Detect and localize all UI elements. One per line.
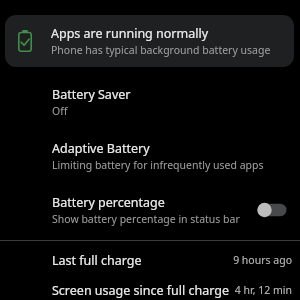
staticText: Apps are running normally [51,25,209,42]
button[interactable]: Battery percentage toggle [254,199,290,221]
staticText: Battery Saver [52,86,131,103]
button[interactable]: Apps are running normally [5,15,294,67]
button[interactable]: Screen usage since full charge [0,280,300,300]
staticText: 9 hours ago [233,253,292,267]
button[interactable]: Last full charge [0,244,300,276]
staticText: Phone has typical background battery usa… [51,43,271,57]
staticText: 4 hr, 12 min [234,283,292,297]
staticText: Show battery percentage in status bar [52,212,240,226]
staticText: Limiting battery for infrequently used a… [52,158,264,172]
staticText: Last full charge [52,252,233,269]
staticText: Screen usage since full charge [52,282,234,299]
button[interactable]: Adaptive Battery [0,135,300,177]
button[interactable]: Battery Saver [0,81,300,123]
staticText: Battery percentage [52,194,165,211]
button[interactable]: Battery percentage [0,189,300,231]
staticText: Off [52,104,68,118]
staticText: Adaptive Battery [52,140,150,157]
